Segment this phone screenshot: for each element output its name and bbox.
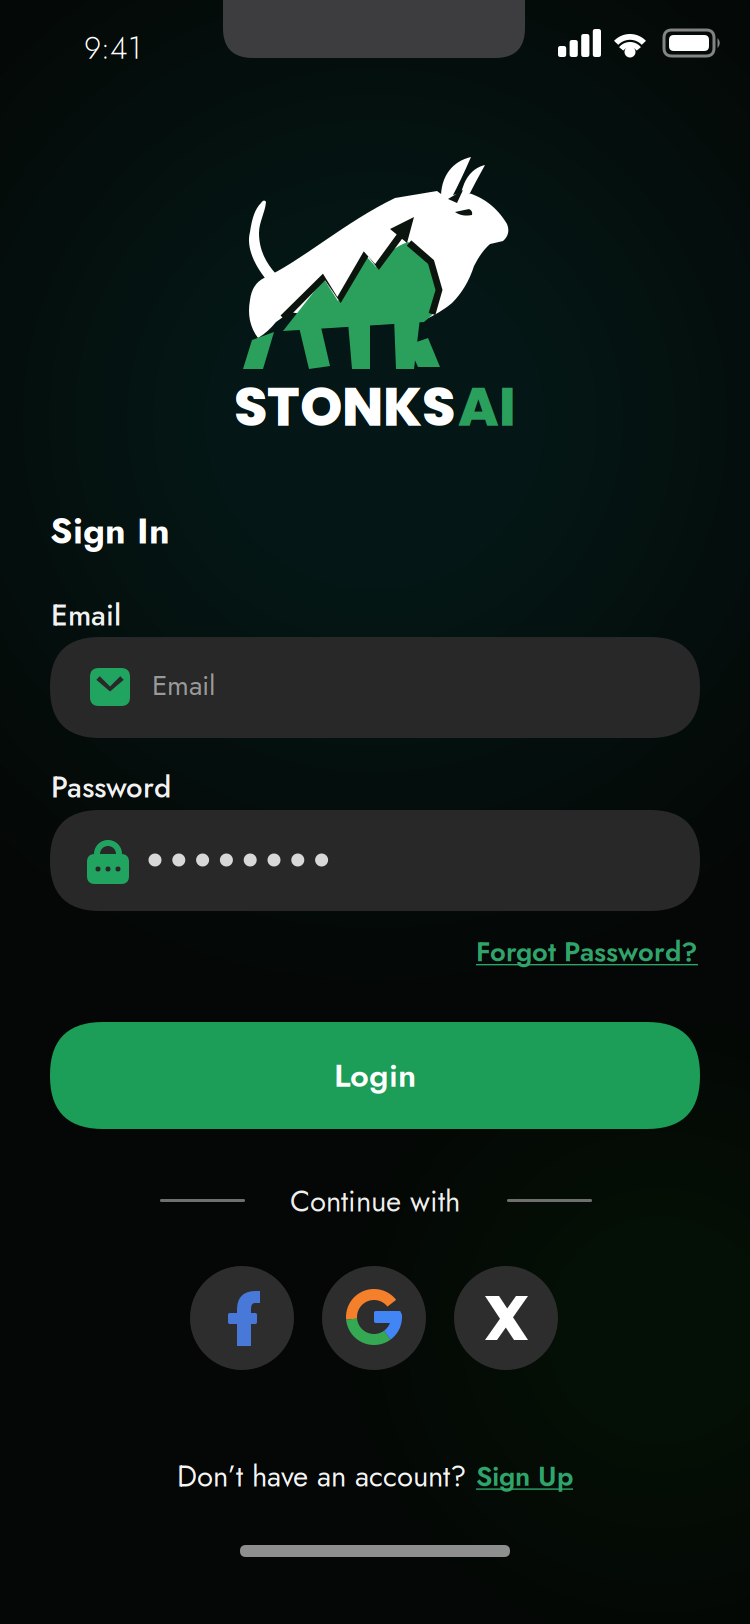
staticText: AI [458,369,516,445]
button[interactable] [190,1266,294,1370]
staticText: Continue with [290,1180,460,1222]
staticText: 9:41 [84,26,141,70]
button[interactable]: Sign Up [476,1456,573,1496]
staticText: STONKS [234,369,455,445]
staticText: Email [51,594,121,636]
staticText: Login [334,1052,416,1099]
staticText: Don’t have an account? [177,1455,466,1497]
button[interactable] [454,1266,558,1370]
button[interactable]: Email [50,637,700,738]
staticText: Sign Up [476,1456,573,1496]
button[interactable] [50,810,700,911]
staticText: Forgot Password? [476,932,698,971]
button[interactable]: Forgot Password? [476,932,698,971]
staticText: Email [152,665,215,705]
staticText: Sign In [50,505,170,557]
button[interactable]: Login [50,1022,700,1129]
button[interactable] [322,1266,426,1370]
staticText: Password [51,766,171,808]
